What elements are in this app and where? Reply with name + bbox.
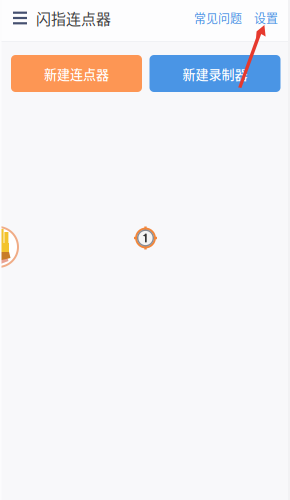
staticText: 新建录制器 xyxy=(182,64,247,83)
staticText: 新建连点器 xyxy=(44,64,109,83)
button[interactable]: 新建录制器 xyxy=(149,55,280,92)
button[interactable]: Floating assistive button xyxy=(0,227,18,267)
staticText: 常见问题 xyxy=(194,9,242,27)
button[interactable]: 设置 xyxy=(248,0,290,36)
button[interactable]: 常见问题 xyxy=(188,0,248,36)
staticText: 闪指连点器 xyxy=(36,7,111,29)
button[interactable]: 新建连点器 xyxy=(11,55,142,92)
staticText: 设置 xyxy=(254,9,278,27)
button[interactable]: Menu xyxy=(0,0,36,36)
button[interactable]: 闪指连点器 xyxy=(36,0,111,36)
